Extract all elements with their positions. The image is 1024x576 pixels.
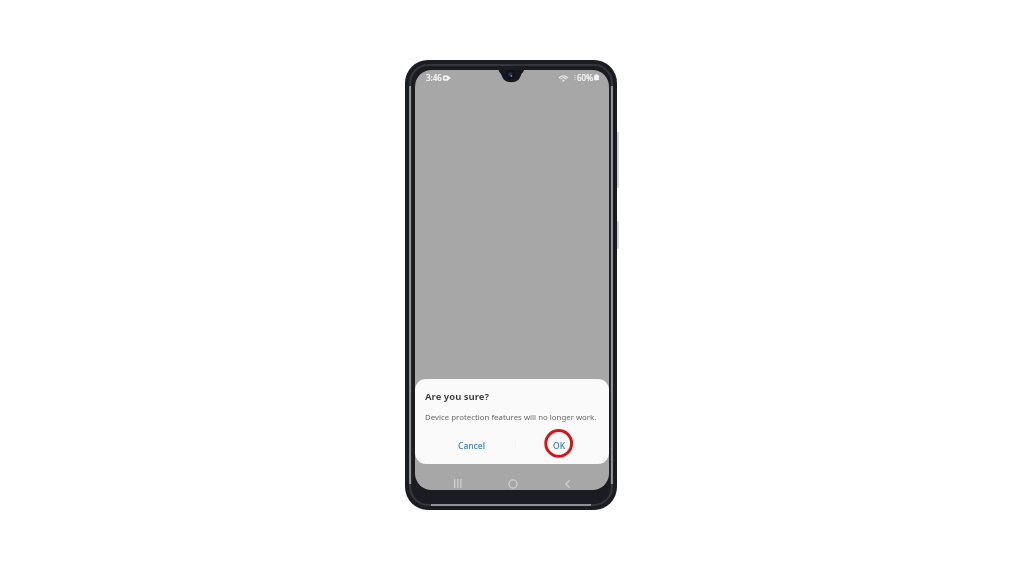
staticText: OK [553,440,566,452]
staticText: 3:46 [426,72,442,83]
staticText: Are you sure? [425,390,489,403]
button[interactable]: Cancel [415,435,512,457]
staticText: Device protection features will no longe… [425,412,597,423]
button[interactable]: OK [512,435,609,457]
button[interactable]: Recents [440,474,476,490]
staticText: 60% [577,72,593,83]
button[interactable]: Home [495,474,531,490]
button[interactable]: Back [549,474,585,490]
staticText: Cancel [458,440,485,452]
